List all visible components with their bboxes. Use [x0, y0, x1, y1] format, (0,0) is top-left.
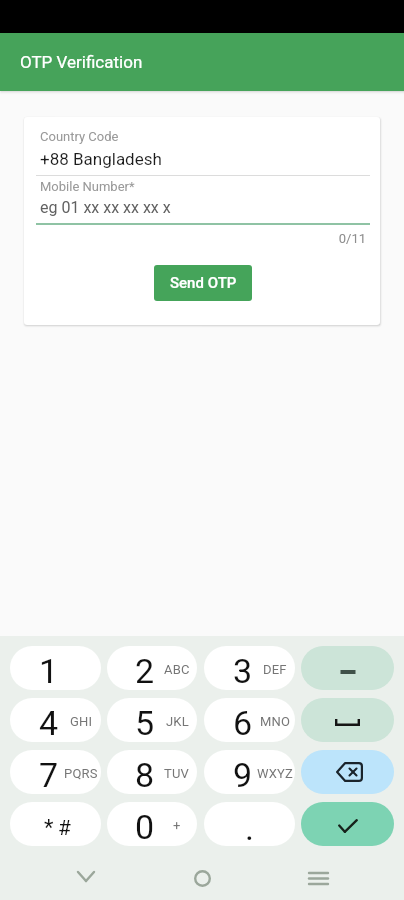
staticText: 1 — [39, 651, 59, 690]
other: Dash — [340, 670, 356, 674]
button[interactable]: Send OTP — [154, 265, 252, 301]
staticText: * — [44, 815, 54, 841]
staticText: WXYZ — [257, 766, 294, 781]
button[interactable]: Back — [64, 854, 108, 898]
button[interactable]: Space — [301, 698, 394, 742]
staticText: 0 — [135, 807, 155, 846]
staticText: Mobile Number* — [40, 179, 135, 194]
button[interactable]: * — [10, 802, 101, 846]
button[interactable]: 1 — [10, 646, 101, 690]
button[interactable]: 5 — [107, 698, 197, 742]
button[interactable]: 3 — [204, 646, 295, 690]
staticText: # — [58, 816, 71, 841]
staticText: Send OTP — [170, 274, 237, 292]
button[interactable]: 8 — [107, 750, 197, 794]
staticText: GHI — [70, 714, 93, 729]
button[interactable]: 9 — [204, 750, 295, 794]
staticText: . — [245, 808, 254, 846]
staticText: +88 Bangladesh — [40, 149, 162, 169]
button[interactable]: 4 — [10, 698, 101, 742]
other: Enter — [338, 819, 358, 833]
other: Space — [335, 719, 360, 726]
staticText: MNO — [260, 714, 291, 729]
staticText: 3 — [233, 651, 253, 690]
staticText: 9 — [233, 755, 253, 794]
staticText: 4 — [39, 703, 59, 742]
staticText: eg 01 xx xx xx xx x — [40, 198, 171, 217]
button[interactable]: 0 — [107, 802, 197, 846]
staticText: + — [173, 818, 181, 833]
button[interactable]: Recent apps — [296, 856, 340, 900]
staticText: 8 — [135, 755, 155, 794]
other: Backspace — [336, 762, 363, 782]
staticText: 2 — [135, 651, 155, 690]
staticText: 5 — [135, 703, 155, 742]
staticText: OTP Verification — [20, 52, 143, 72]
button[interactable]: . — [204, 802, 295, 846]
staticText: 6 — [233, 703, 253, 742]
button[interactable]: Dash — [301, 646, 394, 690]
staticText: JKL — [166, 714, 189, 729]
staticText: Country Code — [40, 129, 119, 144]
button[interactable]: 2 — [107, 646, 197, 690]
button[interactable]: 7 — [10, 750, 101, 794]
staticText: TUV — [164, 766, 190, 781]
button[interactable]: 6 — [204, 698, 295, 742]
staticText: DEF — [263, 662, 287, 677]
staticText: 0/11 — [24, 231, 366, 246]
button[interactable]: Backspace — [301, 750, 394, 794]
staticText: 7 — [39, 755, 59, 794]
button[interactable]: Enter — [301, 802, 394, 846]
staticText: PQRS — [64, 766, 98, 781]
staticText: ABC — [164, 662, 190, 677]
button[interactable]: Home — [180, 856, 224, 900]
